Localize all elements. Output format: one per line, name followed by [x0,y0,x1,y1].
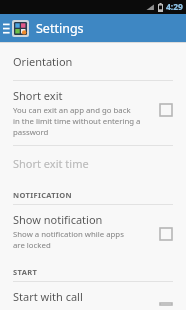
staticText: password [13,127,49,138]
staticText: Show notification [13,212,103,227]
button[interactable]: Start with call [0,282,186,310]
button[interactable]: Short exit [0,81,186,145]
staticText: Orientation [13,54,73,69]
staticText: Show a notification while apps [13,229,124,240]
staticText: You can exit an app and go back [13,105,131,116]
staticText: Start with call [13,289,83,303]
button[interactable]: Orientation [0,43,186,80]
staticText: START [13,267,38,277]
staticText: Short exit [13,88,63,103]
staticText: Settings [36,20,84,37]
staticText: in the limit time without entering a [13,116,141,127]
staticText: NOTIFICATION [13,190,73,200]
button[interactable]: Navigate up [0,20,31,37]
button[interactable]: Short exit time [0,146,186,181]
button[interactable]: Show notification [0,205,186,258]
staticText: Short exit time [13,156,89,171]
staticText: are locked [13,240,51,251]
staticText: 4:29 [166,1,183,13]
